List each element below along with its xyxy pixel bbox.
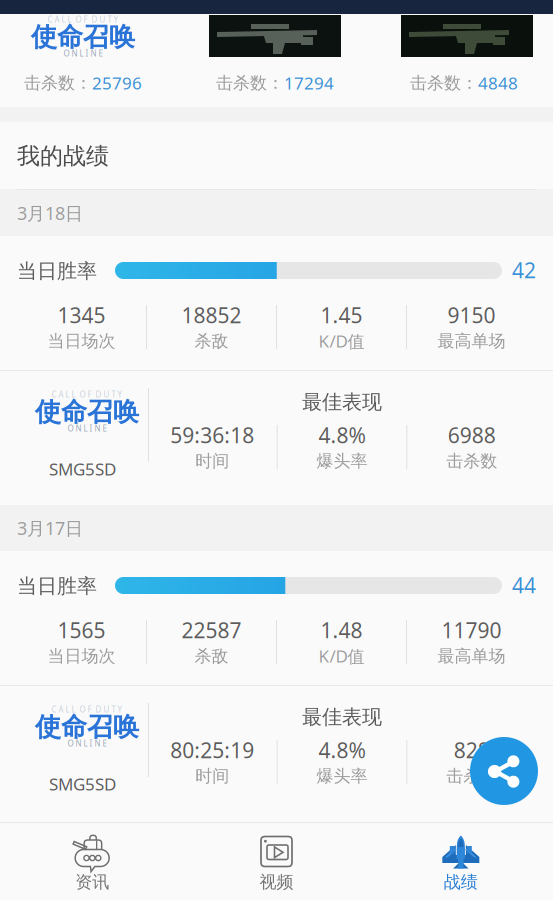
staticText: 爆头率 <box>316 450 367 472</box>
staticText: 最高单场 <box>437 330 505 352</box>
staticText: 18852 <box>181 301 241 329</box>
button[interactable]: 视频 <box>184 823 369 900</box>
staticText: 视频 <box>259 871 293 893</box>
staticText: 使命召唤 <box>35 711 139 743</box>
staticText: 使命召唤 <box>31 21 135 53</box>
staticText: 17294 <box>284 71 334 95</box>
staticText: 杀敌 <box>194 645 228 667</box>
staticText: 1.45 <box>320 301 362 329</box>
button[interactable]: 分享 <box>470 737 538 805</box>
button[interactable]: 击杀数： <box>0 0 553 900</box>
button[interactable]: C A L L O F D U T Y <box>0 0 553 900</box>
staticText: 我的战绩 <box>17 141 109 170</box>
button[interactable]: 击杀数： <box>0 0 553 900</box>
staticText: 22587 <box>181 616 241 644</box>
staticText: 80:25:19 <box>170 736 254 764</box>
staticText: 最佳表现 <box>302 389 382 415</box>
staticText: 最高单场 <box>437 645 505 667</box>
staticText: 6988 <box>448 421 496 449</box>
staticText: C A L L O F D U T Y <box>51 389 122 400</box>
staticText: 3月17日 <box>17 516 83 540</box>
staticText: 击杀数 <box>446 765 497 787</box>
staticText: C A L L O F D U T Y <box>51 704 122 715</box>
staticText: 4.8% <box>318 736 365 764</box>
staticText: 当日胜率 <box>17 258 97 284</box>
staticText: 4.8% <box>318 421 365 449</box>
staticText: 战绩 <box>444 871 478 893</box>
staticText: 时间 <box>195 450 229 472</box>
staticText: 59:36:18 <box>170 421 254 449</box>
staticText: 使命召唤 <box>35 396 139 428</box>
staticText: 42 <box>512 256 536 284</box>
staticText: 4848 <box>478 71 518 95</box>
staticText: 1565 <box>57 616 105 644</box>
staticText: C A L L O F D U T Y <box>47 14 118 25</box>
staticText: 资讯 <box>75 871 109 893</box>
staticText: SMG5SD <box>49 772 116 796</box>
staticText: K/D值 <box>318 644 364 668</box>
staticText: SMG5SD <box>49 457 116 481</box>
staticText: 3月18日 <box>17 201 83 225</box>
staticText: K/D值 <box>318 329 364 353</box>
staticText: 1.48 <box>320 616 362 644</box>
staticText: 9150 <box>447 301 495 329</box>
staticText: 25796 <box>92 71 142 95</box>
staticText: 时间 <box>195 765 229 787</box>
staticText: O N L I N E <box>67 423 106 434</box>
staticText: 11790 <box>441 616 501 644</box>
button[interactable]: 战绩 <box>369 823 553 900</box>
button[interactable]: 资讯 <box>0 823 184 900</box>
staticText: 828 <box>454 736 490 764</box>
staticText: 当日场次 <box>47 645 115 667</box>
staticText: 击杀数： <box>216 72 284 94</box>
staticText: 最佳表现 <box>302 704 382 730</box>
staticText: 击杀数： <box>24 72 92 94</box>
staticText: 44 <box>512 571 536 599</box>
staticText: 击杀数 <box>446 450 497 472</box>
staticText: 1345 <box>57 301 105 329</box>
staticText: 爆头率 <box>316 765 367 787</box>
staticText: 击杀数： <box>410 72 478 94</box>
staticText: O N L I N E <box>63 48 102 59</box>
staticText: 杀敌 <box>194 330 228 352</box>
staticText: 当日胜率 <box>17 573 97 599</box>
staticText: O N L I N E <box>67 738 106 749</box>
staticText: 当日场次 <box>47 330 115 352</box>
